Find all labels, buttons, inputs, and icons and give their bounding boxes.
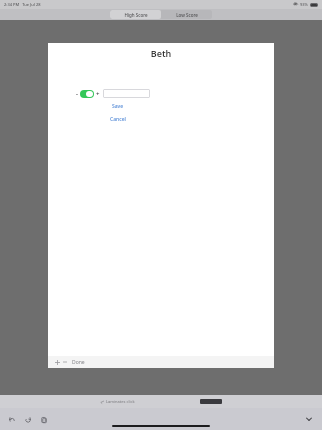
button[interactable]: Save [110,102,126,111]
staticText: 2:34 PM Tue Jul 28 [4,2,41,7]
button[interactable]: Add [53,358,61,366]
button[interactable]: Toggle [80,90,94,98]
staticText: + [96,90,100,98]
button[interactable]: High Score [110,10,161,19]
button[interactable] [103,89,150,98]
button[interactable]: Done [70,359,87,366]
button[interactable]: Redo [23,415,32,424]
button[interactable]: Undo [7,415,16,424]
button[interactable]: Low Score [161,10,212,19]
button[interactable]: Cancel [108,115,128,124]
staticText: 93% [300,2,308,7]
staticText: Laminates click [106,399,135,404]
staticText: Low Score [176,12,198,18]
staticText: Beth [48,47,274,59]
staticText: High Score [124,12,148,18]
staticText: - [76,90,78,98]
button[interactable]: Paste [39,415,48,424]
button[interactable] [200,399,222,404]
button[interactable]: Hide keyboard [304,414,314,424]
